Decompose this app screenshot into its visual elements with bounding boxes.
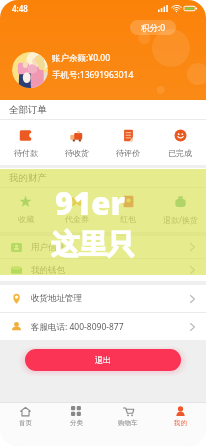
button[interactable]: 我的 — [154, 406, 206, 427]
staticText: 用户信息 — [31, 242, 65, 253]
button[interactable]: 退款/换货 — [154, 195, 206, 225]
button[interactable]: 收货地址管理 — [0, 285, 206, 312]
button[interactable]: 用户信息 — [0, 236, 206, 258]
other: 头像 — [12, 52, 48, 88]
button[interactable]: 收藏 — [0, 195, 51, 224]
staticText: 退款/换货 — [163, 214, 198, 225]
staticText: 红包 — [120, 214, 136, 224]
staticText: 首页 — [19, 419, 32, 427]
staticText: 待评价 — [116, 148, 140, 158]
button[interactable]: 待评价 — [102, 129, 154, 158]
staticText: 待收货 — [65, 148, 89, 158]
staticText: 这里只 — [51, 227, 135, 262]
staticText: 分类 — [70, 419, 83, 427]
staticText: 收货地址管理 — [31, 293, 82, 304]
button[interactable]: 首页 — [0, 406, 51, 427]
button[interactable]: 我的钱包 — [0, 259, 206, 281]
button[interactable]: 积分:0 — [130, 20, 176, 35]
staticText: 客服电话: 400-8090-877 — [31, 321, 124, 333]
staticText: 购物车 — [118, 419, 138, 427]
staticText: 我的 — [174, 419, 187, 427]
button[interactable]: 已完成 — [154, 129, 206, 158]
staticText: 91er — [55, 182, 126, 224]
staticText: 4:48 — [12, 3, 28, 14]
button[interactable]: 购物车 — [102, 406, 154, 427]
staticText: 账户余额:¥0.00 — [52, 52, 111, 64]
staticText: 代金券 — [65, 214, 89, 224]
button[interactable]: 分类 — [51, 406, 102, 427]
staticText: 收藏 — [18, 214, 34, 224]
button[interactable]: 客服电话: 400-8090-877 — [0, 313, 206, 340]
staticText: 我的钱包 — [31, 265, 65, 276]
staticText: 积分:0 — [141, 22, 166, 34]
button[interactable]: 退出 — [25, 349, 181, 371]
button[interactable]: 代金券 — [51, 195, 102, 224]
button[interactable]: 红包 — [102, 195, 154, 224]
button[interactable]: 待付款 — [0, 129, 51, 158]
staticText: 退出 — [95, 355, 111, 365]
staticText: 手机号:13691963014 — [52, 69, 134, 81]
staticText: 已完成 — [168, 148, 192, 158]
button[interactable]: 待收货 — [51, 129, 102, 158]
staticText: 我的财产 — [9, 172, 47, 184]
staticText: 待付款 — [14, 148, 38, 158]
staticText: 全部订单 — [9, 104, 47, 116]
